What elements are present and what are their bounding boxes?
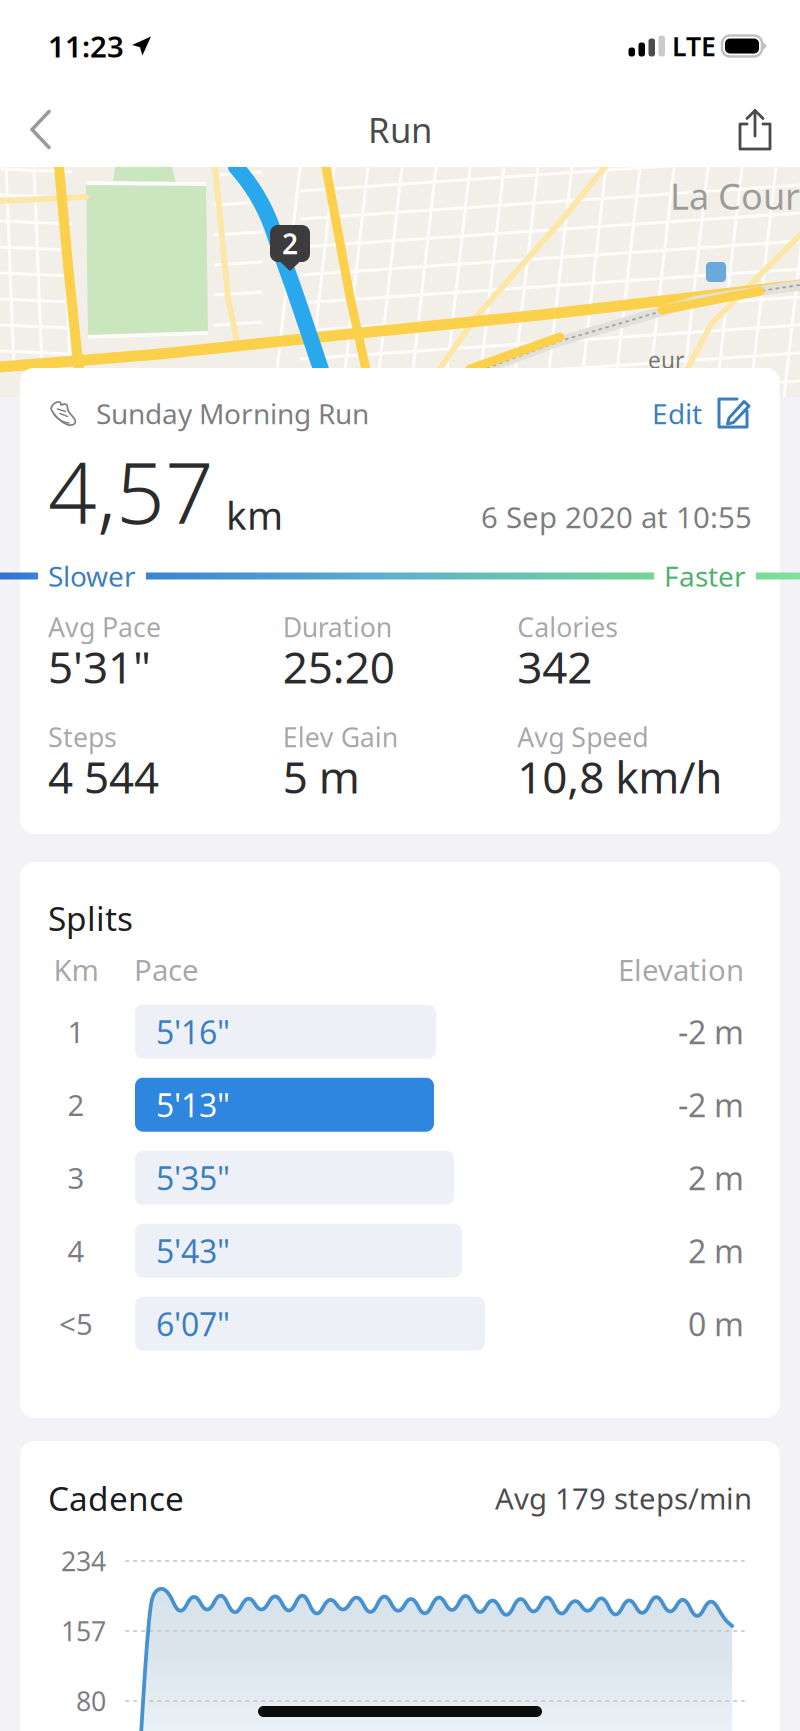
button[interactable]: Edit [652, 395, 752, 432]
staticText: 5'31" [48, 637, 151, 696]
staticText: 6'07" [156, 1302, 230, 1345]
staticText: Slower [48, 557, 136, 595]
staticText: La Cour [670, 172, 800, 220]
staticText: 4,57 [48, 434, 214, 547]
button[interactable]: Back [0, 94, 77, 164]
staticText: Sunday Morning Run [96, 395, 369, 432]
staticText: 3 [67, 1158, 84, 1197]
staticText: Elev Gain [283, 719, 398, 755]
staticText: km [226, 489, 283, 540]
staticText: 5'16" [156, 1010, 230, 1053]
staticText: 80 [76, 1683, 106, 1719]
staticText: 234 [61, 1543, 106, 1579]
staticText: Pace [134, 950, 199, 989]
staticText: 2 m [688, 1229, 744, 1272]
staticText: Faster [664, 557, 746, 595]
staticText: Steps [48, 719, 117, 755]
staticText: Elevation [618, 950, 744, 989]
staticText: Edit [652, 395, 702, 432]
staticText: -2 m [678, 1010, 744, 1053]
staticText: 5'35" [156, 1156, 230, 1199]
staticText: Avg 179 steps/min [495, 1478, 752, 1517]
staticText: 1 [67, 1012, 84, 1051]
staticText: -2 m [678, 1083, 744, 1126]
staticText: 10,8 km/h [517, 747, 722, 806]
staticText: Calories [517, 609, 618, 645]
staticText: 2 m [688, 1156, 744, 1199]
staticText: Run [368, 106, 432, 152]
staticText: 5'43" [156, 1229, 230, 1272]
staticText: 0 m [688, 1302, 744, 1345]
staticText: 157 [61, 1613, 106, 1649]
staticText: 2 [67, 1085, 84, 1124]
staticText: Cadence [48, 1476, 184, 1520]
staticText: 25:20 [283, 637, 395, 696]
staticText: 6 Sep 2020 at 10:55 [481, 497, 752, 536]
staticText: 2 [282, 225, 298, 262]
staticText: Avg Pace [48, 609, 161, 645]
staticText: Km [53, 950, 98, 989]
button[interactable]: Share [714, 96, 800, 163]
staticText: Avg Speed [517, 719, 648, 755]
staticText: 11:23 [48, 26, 124, 65]
staticText: Splits [48, 896, 133, 940]
staticText: <5 [59, 1304, 93, 1343]
staticText: 5'13" [156, 1083, 230, 1126]
staticText: LTE [672, 28, 716, 64]
staticText: 4 544 [48, 747, 159, 806]
staticText: 342 [517, 637, 592, 696]
staticText: Duration [283, 609, 392, 645]
staticText: 5 m [283, 747, 360, 806]
staticText: eur [648, 345, 684, 375]
staticText: 4 [67, 1231, 84, 1270]
